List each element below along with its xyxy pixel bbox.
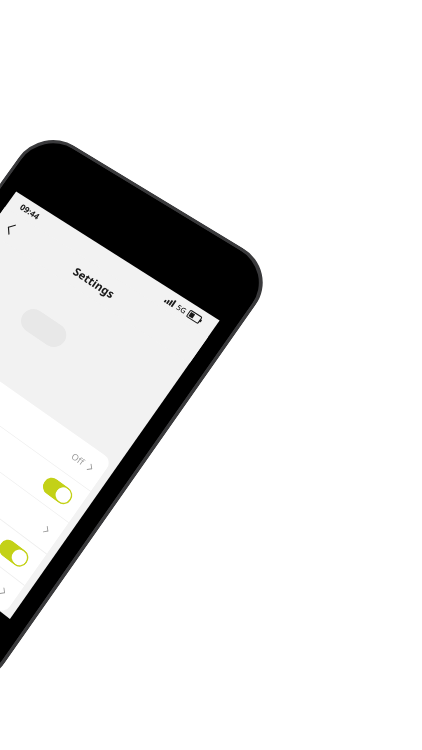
button[interactable]: Noise control (0, 329, 113, 491)
staticText: 09:44 (18, 201, 42, 222)
staticText: Settings (70, 264, 118, 301)
button[interactable]: Auto play / pause (0, 387, 69, 554)
staticText: 5G (175, 302, 189, 316)
button[interactable]: In-ear detection (0, 416, 47, 585)
staticText: Off (69, 450, 87, 468)
button[interactable]: Equalizer (0, 445, 24, 615)
button[interactable]: Toggle (0, 536, 32, 570)
button[interactable]: Back (0, 214, 26, 243)
button[interactable]: Toggle (39, 474, 76, 508)
button[interactable]: Touch controls (0, 358, 91, 522)
